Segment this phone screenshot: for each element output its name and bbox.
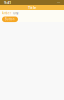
staticText: Amber [2, 11, 11, 15]
staticText: 9:41 [4, 0, 11, 5]
staticText: Button [5, 17, 15, 21]
staticText: Gray [13, 11, 18, 15]
staticText: ··· [57, 0, 60, 5]
staticText: Title [28, 5, 36, 10]
